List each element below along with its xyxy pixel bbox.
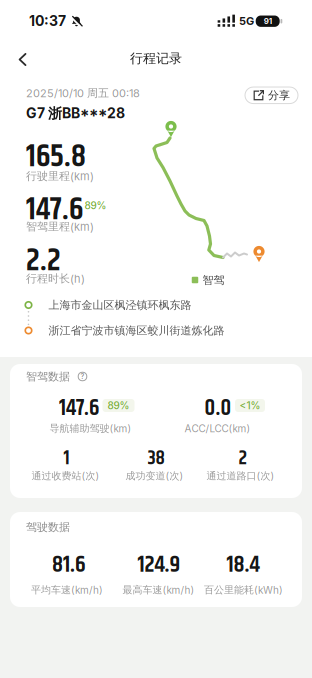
staticText: 最高车速(km/h) [122,584,194,596]
staticText: 百公里能耗(kWh) [204,584,283,596]
staticText: 智驾 [202,273,224,287]
staticText: 81.6 [52,547,86,583]
staticText: 18.4 [226,547,259,583]
staticText: 91 [264,16,272,26]
staticText: G7 浙BB***28 [26,105,125,122]
staticText: 平均车速(km/h) [31,584,103,596]
staticText: 89% [107,400,129,411]
staticText: 165.8 [26,132,86,181]
staticText: 行程时长(h) [26,272,85,285]
staticText: 通过收费站(次) [31,470,99,482]
staticText: 147.6 [59,391,99,426]
staticText: 成功变道(次) [125,470,183,482]
staticText: 行驶里程(km) [26,169,94,183]
staticText: 1 [63,443,69,474]
button[interactable]: 智驾数据说明 [78,372,87,381]
staticText: 导航辅助驾驶(km) [49,422,131,435]
staticText: 智驾里程(km) [26,220,94,233]
staticText: 上海市金山区枫泾镇环枫东路 [48,298,191,312]
staticText: 智驾数据 [26,370,70,383]
staticText: 38 [147,443,164,474]
staticText: 5G [239,14,254,27]
staticText: 10:37 [29,13,66,29]
staticText: 2 [238,443,247,474]
staticText: 89% [84,200,106,211]
staticText: 147.6 [26,185,83,234]
staticText: 通过道路口(次) [206,470,274,482]
staticText: 浙江省宁波市镇海区蛟川街道炼化路 [48,324,224,337]
staticText: 2025/10/10 周五 00:18 [26,86,140,100]
staticText: ACC/LCC(km) [184,423,250,434]
button[interactable]: Back [9,43,37,76]
staticText: ? [80,372,84,381]
staticText: <1% [239,400,260,411]
button[interactable]: 分享 [245,87,298,103]
staticText: 分享 [268,88,290,102]
staticText: 0.0 [204,391,231,426]
staticText: 驾驶数据 [26,520,70,534]
staticText: 行程记录 [130,50,182,66]
staticText: 2.2 [26,236,61,285]
staticText: 124.9 [137,547,180,583]
